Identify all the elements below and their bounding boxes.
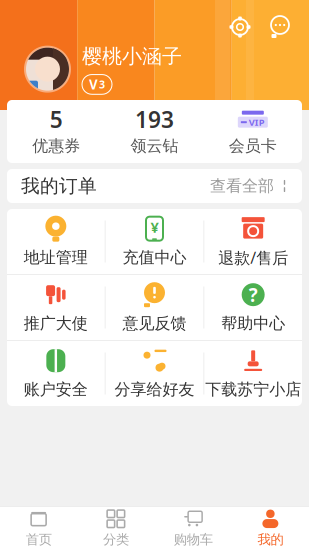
staticText: 账户安全 bbox=[24, 380, 88, 399]
button[interactable]: 分类 bbox=[77, 507, 154, 550]
button[interactable]: 意见反馈 bbox=[106, 275, 203, 340]
button[interactable]: 我的订单 bbox=[7, 169, 302, 203]
staticText: 优惠券 bbox=[32, 136, 80, 156]
button[interactable]: VIP bbox=[204, 100, 302, 163]
staticText: 首页 bbox=[26, 531, 52, 548]
button[interactable]: 账户安全 bbox=[7, 341, 105, 406]
staticText: 退款/售后 bbox=[218, 247, 288, 268]
button[interactable]: 头像 bbox=[24, 46, 71, 93]
button[interactable]: 5 bbox=[7, 100, 105, 163]
staticText: 充值中心 bbox=[122, 248, 186, 267]
staticText: 分享给好友 bbox=[114, 380, 194, 399]
button[interactable]: 下载苏宁小店 bbox=[204, 341, 302, 406]
button[interactable]: 设置 bbox=[225, 12, 255, 42]
staticText: 193 bbox=[135, 104, 174, 134]
staticText: V bbox=[89, 76, 98, 93]
staticText: 樱桃小涵子 bbox=[82, 44, 182, 69]
staticText: VIP bbox=[249, 116, 265, 128]
button[interactable]: 首页 bbox=[0, 507, 77, 550]
button[interactable]: 退款/售后 bbox=[204, 209, 302, 274]
button[interactable]: 193 bbox=[105, 100, 204, 163]
staticText: 领云钻 bbox=[130, 136, 178, 156]
button[interactable]: 地址管理 bbox=[7, 209, 105, 274]
button[interactable]: 消息 bbox=[265, 12, 295, 42]
button[interactable]: V bbox=[82, 75, 112, 94]
staticText: 地址管理 bbox=[24, 248, 88, 267]
staticText: ¥ bbox=[150, 217, 158, 237]
button[interactable]: 我的 bbox=[232, 507, 309, 550]
staticText: 会员卡 bbox=[229, 136, 277, 156]
staticText: 3 bbox=[99, 77, 105, 91]
staticText: 下载苏宁小店 bbox=[205, 380, 301, 399]
button[interactable]: ¥ bbox=[106, 209, 203, 274]
button[interactable]: 购物车 bbox=[154, 507, 232, 550]
staticText: 意见反馈 bbox=[122, 314, 186, 333]
staticText: 分类 bbox=[103, 531, 129, 548]
staticText: 推广大使 bbox=[24, 314, 88, 333]
staticText: 查看全部 bbox=[210, 176, 274, 196]
staticText: 购物车 bbox=[174, 531, 213, 548]
button[interactable]: ? bbox=[204, 275, 302, 340]
button[interactable]: 分享给好友 bbox=[106, 341, 203, 406]
staticText: 我的 bbox=[257, 531, 283, 548]
button[interactable]: 推广大使 bbox=[7, 275, 105, 340]
staticText: ? bbox=[249, 282, 258, 307]
staticText: 5 bbox=[50, 104, 63, 134]
staticText: 我的订单 bbox=[21, 174, 97, 197]
staticText: 帮助中心 bbox=[221, 314, 285, 333]
